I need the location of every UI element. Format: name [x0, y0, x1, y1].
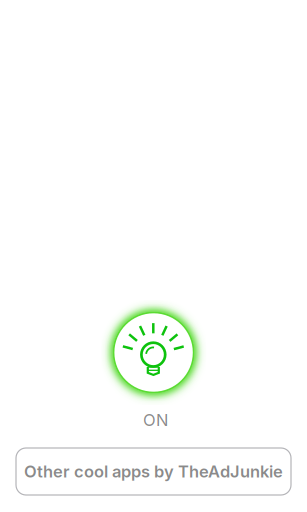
button[interactable]: Other cool apps by TheAdJunkie	[16, 448, 291, 495]
staticText: ON	[143, 410, 168, 430]
staticText: Other cool apps by TheAdJunkie	[24, 461, 283, 481]
button[interactable]: Toggle flashlight	[95, 293, 213, 411]
